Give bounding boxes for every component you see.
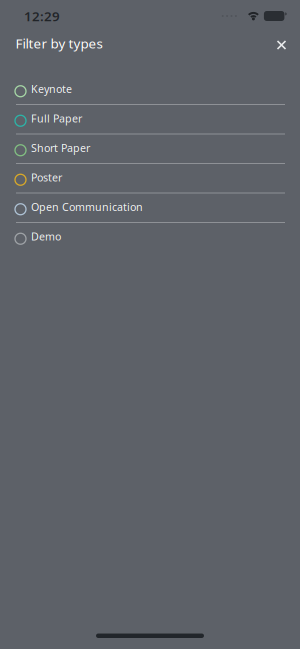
button[interactable]: Full Paper — [0, 105, 300, 134]
staticText: Full Paper — [31, 111, 82, 125]
button[interactable]: Poster — [0, 164, 300, 193]
staticText: Keynote — [31, 82, 72, 96]
button[interactable]: Open Communication — [0, 193, 300, 223]
staticText: Short Paper — [31, 141, 90, 155]
staticText: Demo — [31, 229, 61, 243]
button[interactable]: Demo — [0, 223, 300, 252]
staticText: Filter by types — [15, 34, 102, 52]
staticText: 12:29 — [24, 7, 60, 25]
button[interactable]: Close — [264, 32, 294, 58]
button[interactable]: Keynote — [0, 75, 300, 105]
staticText: Open Communication — [31, 200, 143, 214]
staticText: Poster — [31, 170, 62, 184]
button[interactable]: Short Paper — [0, 134, 300, 164]
